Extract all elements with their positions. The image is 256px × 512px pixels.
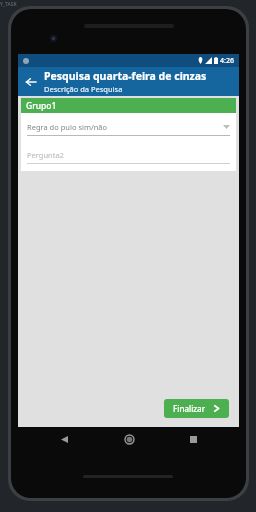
button[interactable]: Grupo1 (21, 98, 236, 113)
button[interactable]: Finalizar (164, 399, 229, 418)
staticText: Y_TASK (0, 1, 17, 8)
staticText: Descrição da Pesquisa (44, 84, 123, 94)
button[interactable]: Back (53, 428, 75, 450)
staticText: Pergunta2 (27, 150, 64, 160)
button[interactable]: Home (118, 428, 140, 450)
staticText: Grupo1 (26, 100, 57, 112)
staticText: 4:26 (220, 56, 234, 66)
button[interactable]: Pergunta2 (27, 150, 230, 164)
staticText: Regra do pulo sim/não (27, 122, 223, 132)
button[interactable]: Regra do pulo sim/não (27, 122, 230, 136)
staticText: Finalizar (173, 403, 206, 414)
staticText: Pesquisa quarta-feira de cinzas (44, 69, 207, 83)
button[interactable]: Recents (182, 428, 204, 450)
button[interactable]: Navigate up (18, 67, 44, 96)
